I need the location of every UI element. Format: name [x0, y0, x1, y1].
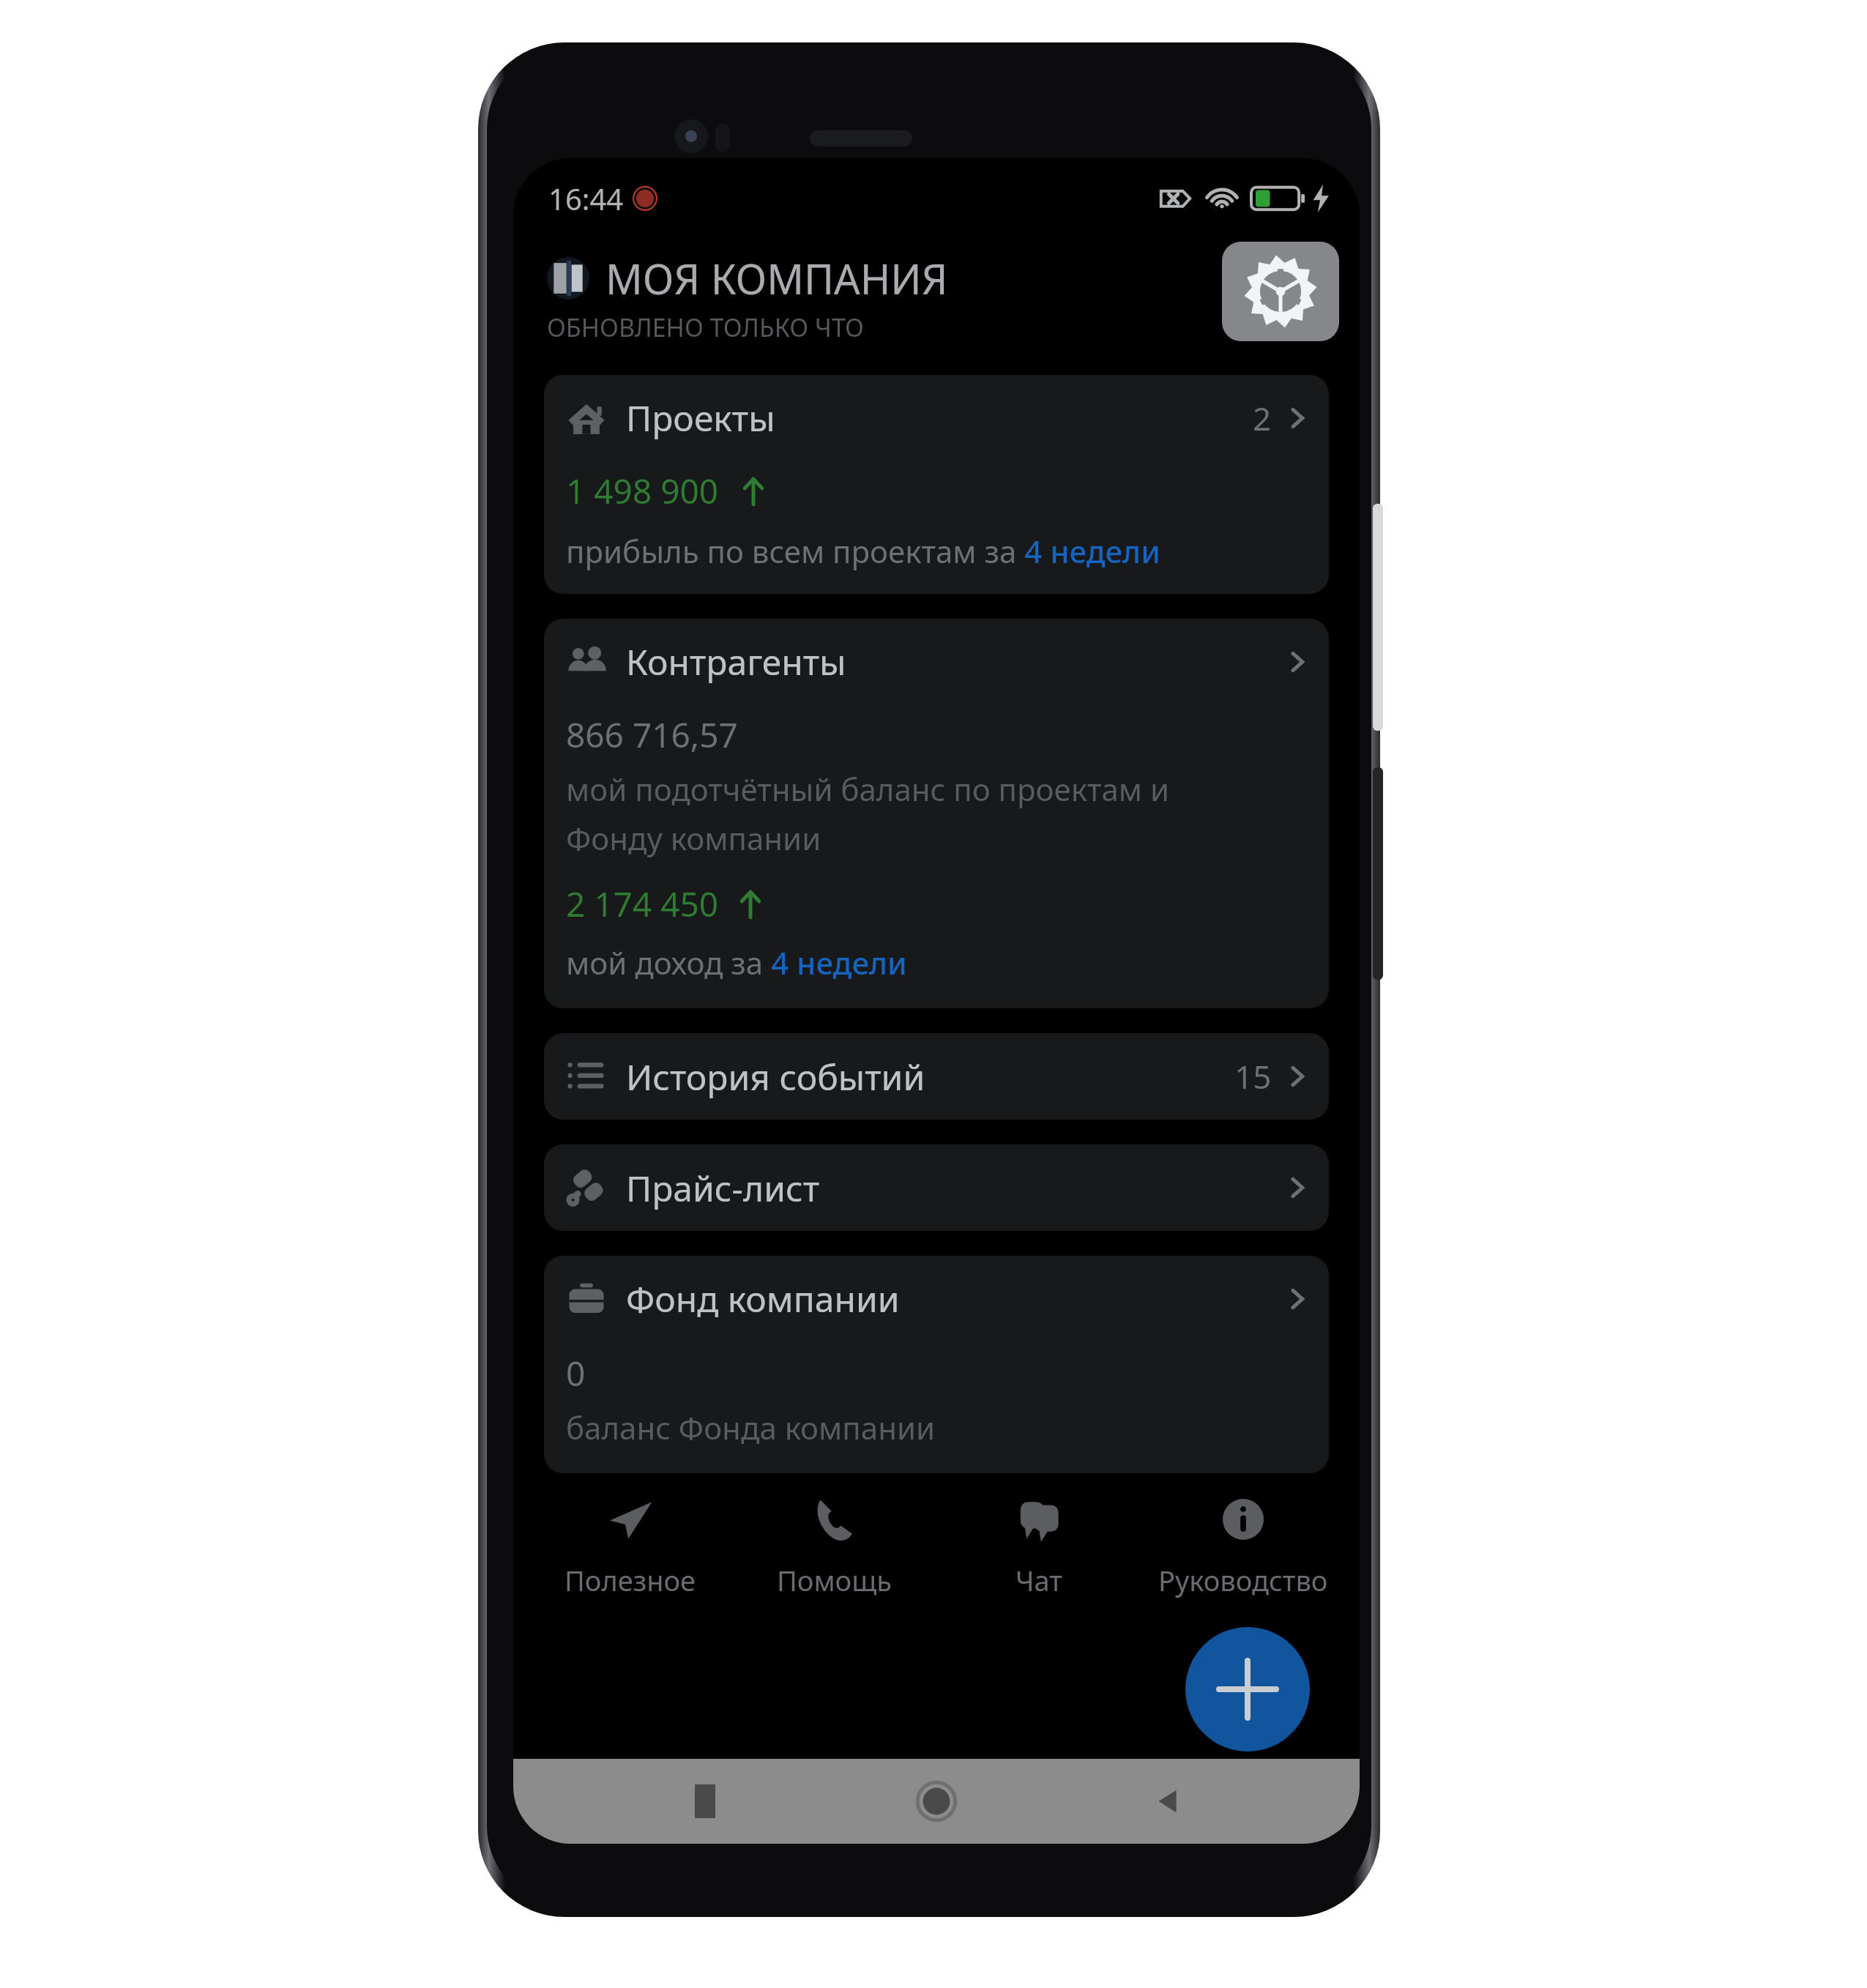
button[interactable]: Recents [665, 1761, 745, 1842]
button[interactable]: Фонд компании [544, 1256, 1329, 1473]
staticText: мой доход за 4 недели [566, 942, 907, 983]
staticText: баланс Фонда компании [566, 1407, 936, 1448]
staticText: МОЯ КОМПАНИЯ [605, 250, 948, 306]
button[interactable]: Контрагенты [544, 619, 1329, 1008]
staticText: Руководство [1158, 1561, 1328, 1599]
staticText: 0 [566, 1350, 586, 1396]
staticText: Чат [1016, 1561, 1062, 1599]
button[interactable]: Settings [1222, 242, 1339, 341]
staticText: Контрагенты [626, 638, 846, 685]
staticText: прибыль по всем проектам за 4 недели [566, 530, 1160, 572]
button[interactable]: Проекты [544, 375, 1329, 594]
staticText: 1 498 900 [566, 468, 719, 514]
staticText: 15 [1234, 1054, 1272, 1098]
button[interactable]: История событий [544, 1033, 1329, 1120]
staticText: Полезное [564, 1561, 696, 1599]
staticText: Фонду компании [566, 817, 821, 859]
staticText: 2 174 450 [566, 881, 719, 927]
staticText: 16:44 [548, 179, 624, 218]
button[interactable]: Руководство [1141, 1473, 1345, 1620]
staticText: Помощь [777, 1561, 892, 1599]
staticText: Прайс-лист [626, 1164, 819, 1212]
staticText: 866 716,57 [566, 712, 738, 758]
staticText: Фонд компании [626, 1275, 900, 1322]
button[interactable]: Back [1128, 1761, 1209, 1842]
button[interactable]: Полезное [528, 1473, 732, 1620]
button[interactable]: Add [1185, 1627, 1310, 1751]
staticText: мой подотчётный баланс по проектам и [566, 768, 1170, 810]
button[interactable]: Помощь [732, 1473, 936, 1620]
button[interactable]: Прайс-лист [544, 1144, 1329, 1231]
button[interactable]: Home [896, 1761, 977, 1842]
staticText: История событий [626, 1053, 925, 1101]
button[interactable]: Чат [936, 1473, 1141, 1620]
staticText: 2 [1253, 396, 1272, 440]
staticText: ОБНОВЛЕНО ТОЛЬКО ЧТО [547, 310, 864, 344]
staticText: Проекты [626, 394, 775, 442]
